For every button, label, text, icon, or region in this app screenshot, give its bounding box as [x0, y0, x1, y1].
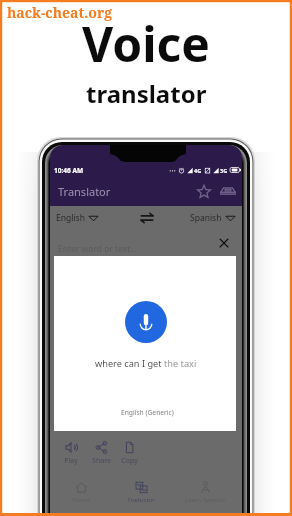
button[interactable]: Traductor: [121, 481, 161, 504]
staticText: Voice: [82, 11, 211, 76]
staticText: 3G: [220, 167, 228, 174]
staticText: Spanish: [190, 212, 222, 224]
staticText: English (Generic): [121, 408, 174, 417]
staticText: 10:46 AM: [54, 166, 84, 175]
staticText: Share: [92, 456, 111, 466]
button[interactable]: Swap languages: [138, 209, 156, 227]
button[interactable]: Favorites: [196, 184, 212, 200]
button[interactable]: History: [218, 184, 238, 197]
button[interactable]: Spanish: [182, 209, 236, 227]
staticText: Home: [72, 496, 90, 504]
button[interactable]: Start voice input: [125, 301, 167, 343]
staticText: Learn Spanish: [185, 496, 225, 504]
staticText: where can I get: [95, 357, 164, 370]
button[interactable]: Clear text: [217, 236, 231, 250]
staticText: the taxi: [164, 357, 197, 370]
staticText: Copy: [121, 456, 138, 466]
button[interactable]: English: [56, 209, 108, 227]
staticText: Traductor: [127, 496, 155, 504]
button[interactable]: Copy: [117, 441, 141, 466]
button[interactable]: Play: [59, 441, 83, 466]
staticText: Play: [64, 456, 78, 466]
staticText: 4G: [194, 167, 202, 174]
staticText: Enter word or text...: [58, 243, 138, 255]
staticText: English: [56, 212, 85, 224]
staticText: hack-cheat.org: [7, 3, 113, 22]
staticText: Translator: [58, 184, 111, 199]
staticText: translator: [86, 77, 207, 110]
button[interactable]: Share: [89, 441, 113, 466]
